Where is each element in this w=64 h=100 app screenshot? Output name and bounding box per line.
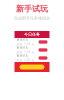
- staticText: 新手试玩: [16, 4, 48, 14]
- staticText: 奖励 1.00 元: [16, 42, 34, 46]
- staticText: 今日任务: [24, 32, 40, 37]
- staticText: 邀请好友: [16, 54, 28, 57]
- staticText: 奖励 1.00 元: [16, 50, 34, 54]
- staticText: 邀请好友: [16, 38, 28, 41]
- staticText: 奖励 1.00 元: [16, 58, 34, 62]
- staticText: 邀请好友: [16, 46, 28, 49]
- staticText: 完成新手任务领现金: [14, 16, 50, 21]
